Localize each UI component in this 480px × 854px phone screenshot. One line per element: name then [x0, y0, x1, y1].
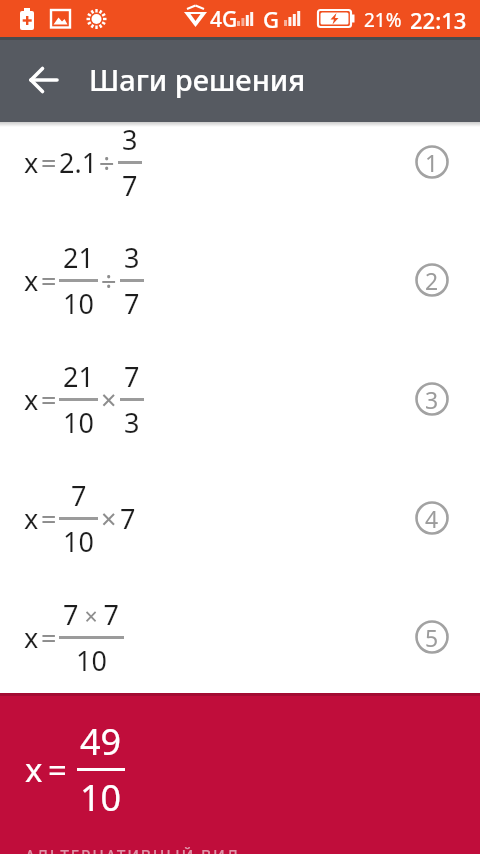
staticText: 3: [124, 404, 140, 441]
staticText: 21: [63, 239, 94, 276]
staticText: ×: [101, 381, 117, 418]
staticText: 4G: [210, 5, 238, 34]
staticText: 7: [71, 477, 87, 514]
staticText: x: [24, 262, 39, 299]
button[interactable]: x: [0, 577, 480, 697]
staticText: =: [41, 500, 57, 537]
staticText: =: [48, 747, 67, 792]
staticText: 10: [63, 404, 94, 441]
staticText: x: [24, 144, 39, 181]
staticText: ÷: [99, 144, 115, 181]
staticText: x: [24, 500, 39, 537]
staticText: 10: [63, 285, 94, 322]
staticText: 21: [63, 358, 94, 395]
button[interactable]: АЛЬТЕРНАТИВНЫЙ ВИД: [25, 845, 240, 854]
staticText: =: [41, 144, 57, 181]
staticText: ×: [101, 500, 117, 537]
staticText: 7: [122, 167, 138, 204]
staticText: =: [41, 619, 57, 656]
button[interactable]: x: [0, 102, 480, 222]
staticText: x: [25, 747, 43, 792]
staticText: =: [41, 262, 57, 299]
staticText: G: [263, 4, 279, 34]
button[interactable]: x: [0, 339, 480, 459]
staticText: 7: [124, 358, 140, 395]
staticText: 5: [425, 622, 439, 653]
staticText: 3: [122, 121, 138, 158]
staticText: 3: [425, 384, 439, 415]
staticText: 10: [80, 773, 122, 822]
staticText: 2.1: [59, 144, 98, 181]
staticText: 4: [425, 503, 439, 534]
button[interactable]: x: [0, 220, 480, 340]
staticText: x: [24, 381, 39, 418]
staticText: 10: [63, 523, 94, 560]
button[interactable]: x: [0, 458, 480, 578]
staticText: 10: [76, 642, 107, 679]
staticText: 1: [425, 147, 439, 178]
staticText: 7 × 7: [63, 596, 120, 633]
button[interactable]: x: [0, 693, 480, 854]
staticText: =: [41, 381, 57, 418]
staticText: 49: [80, 717, 122, 766]
staticText: ÷: [101, 262, 117, 299]
staticText: 22:13: [410, 5, 467, 35]
staticText: 2: [425, 265, 439, 296]
staticText: 21%: [364, 7, 402, 33]
staticText: 3: [124, 239, 140, 276]
staticText: Шаги решения: [89, 60, 306, 99]
staticText: x: [24, 619, 39, 656]
staticText: 7: [120, 500, 136, 537]
button[interactable]: [16, 52, 72, 108]
staticText: 7: [124, 285, 140, 322]
